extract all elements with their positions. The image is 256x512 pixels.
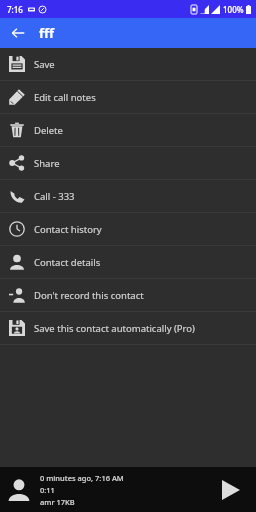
staticText: Don't record this contact (34, 289, 144, 302)
button[interactable]: Contact history (0, 213, 256, 245)
button[interactable]: Don't record this contact (0, 279, 256, 311)
button[interactable]: Save this contact automatically (Pro) (0, 312, 256, 344)
button[interactable]: Call - 333 (0, 180, 256, 212)
staticText: 0 minutes ago, 7:16 AM (40, 473, 124, 483)
button[interactable]: Delete (0, 114, 256, 146)
staticText: Save (34, 58, 55, 71)
staticText: Save this contact automatically (Pro) (34, 322, 195, 335)
staticText: 0:11 (40, 485, 55, 495)
staticText: Edit call notes (34, 91, 96, 104)
staticText: 100% (223, 4, 244, 15)
staticText: Call - 333 (34, 190, 75, 203)
button[interactable]: 0 minutes ago, 7:16 AM (0, 467, 256, 512)
staticText: Delete (34, 124, 63, 137)
staticText: Contact history (34, 223, 102, 236)
button[interactable]: Contact details (0, 246, 256, 278)
button[interactable]: Play (212, 471, 250, 509)
staticText: 7:16 (7, 4, 23, 15)
staticText: Contact details (34, 256, 101, 269)
staticText: Share (34, 157, 60, 170)
button[interactable]: Back (6, 21, 30, 45)
staticText: fff (39, 24, 55, 42)
button[interactable]: Edit call notes (0, 81, 256, 113)
button[interactable]: Save (0, 48, 256, 80)
staticText: amr 17KB (40, 497, 75, 507)
button[interactable]: Share (0, 147, 256, 179)
